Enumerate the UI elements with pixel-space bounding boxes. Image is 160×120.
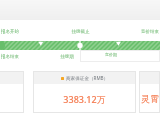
staticText: 挂牌截止 [54, 29, 107, 35]
button[interactable]: 商家保证金（RMB） [33, 71, 136, 113]
staticText: 竞价期 [105, 52, 117, 57]
staticText: 报名结束 [1, 54, 45, 60]
staticText: 3383.12万 [63, 93, 106, 105]
button[interactable]: 灵霄 [139, 71, 160, 113]
button[interactable]: Auction timeline progress [0, 41, 160, 50]
staticText: 灵霄 [141, 93, 159, 104]
staticText: 报名开始 [1, 29, 54, 35]
button[interactable] [0, 71, 24, 113]
staticText: 挂牌期 [45, 54, 89, 60]
staticText: 竞价期 [89, 54, 160, 60]
staticText: 商家保证金（RMB） [66, 75, 109, 81]
staticText: 竞价结束 [107, 29, 159, 35]
